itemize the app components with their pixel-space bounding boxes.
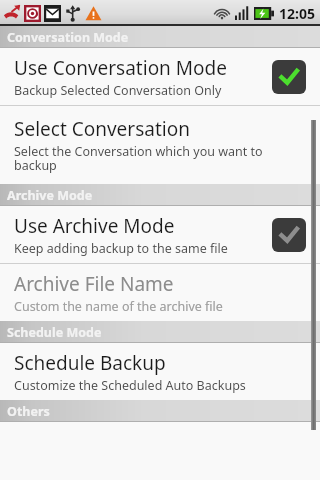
button[interactable]: Use Archive Mode [0,206,320,263]
staticText: Custom the name of the archive file [14,298,223,315]
staticText: Backup Selected Conversation Only [14,82,222,99]
staticText: Use Conversation Mode [14,55,227,81]
button[interactable]: Select Conversation [0,106,320,184]
staticText: Schedule Mode [7,324,102,341]
button[interactable]: Checked [272,60,306,94]
button[interactable]: Checkbox [272,218,306,252]
staticText: Archive Mode [7,187,93,204]
button[interactable]: Archive File Name [0,264,320,321]
staticText: Select Conversation [14,116,190,142]
staticText: Conversation Mode [7,29,129,46]
staticText: Schedule Backup [14,350,166,376]
button[interactable]: Use Conversation Mode [0,48,320,105]
staticText: 12:05 [279,4,315,23]
staticText: Use Archive Mode [14,213,175,239]
staticText: Select the Conversation which you want t… [14,143,263,174]
button[interactable]: Schedule Backup [0,343,320,400]
staticText: Keep adding backup to the same file [14,240,228,257]
staticText: Others [7,403,50,420]
staticText: Customize the Scheduled Auto Backups [14,377,246,394]
staticText: Archive File Name [14,271,174,297]
